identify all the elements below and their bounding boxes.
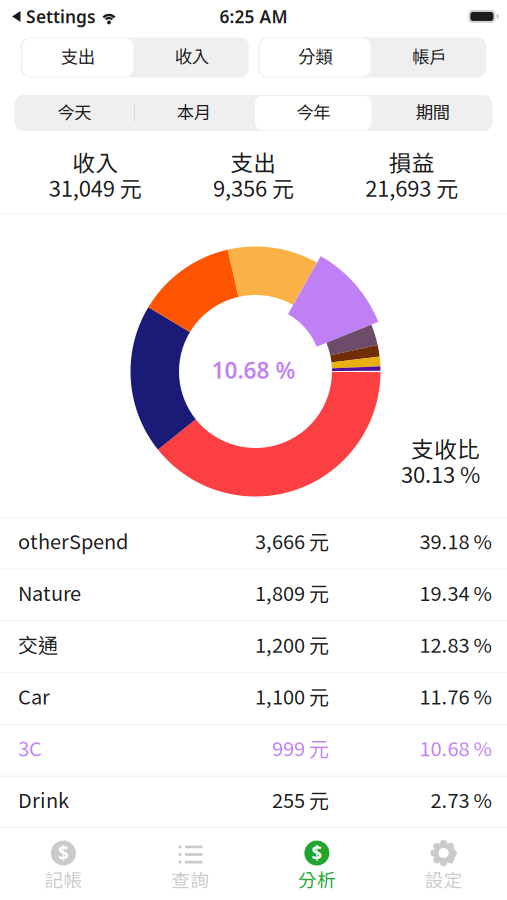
- button[interactable]: 分類: [258, 37, 372, 77]
- staticText: 10.68 %: [211, 355, 295, 385]
- staticText: 11.76 %: [419, 681, 491, 710]
- button[interactable]: 帳戶: [372, 37, 486, 77]
- staticText: Drink: [18, 785, 69, 814]
- staticText: 30.13 %: [401, 458, 480, 489]
- staticText: 39.18 %: [419, 526, 491, 555]
- staticText: 999 元: [272, 733, 329, 762]
- staticText: 損益: [389, 145, 435, 178]
- staticText: 支出: [61, 43, 95, 68]
- button[interactable]: $: [253, 828, 380, 900]
- staticText: 1,200 元: [255, 630, 329, 659]
- staticText: 1,809 元: [255, 578, 329, 607]
- staticText: 設定: [425, 865, 463, 892]
- button[interactable]: 今天: [14, 95, 134, 131]
- staticText: Settings: [26, 5, 96, 28]
- staticText: 本月: [177, 99, 211, 124]
- staticText: 分類: [298, 43, 332, 68]
- staticText: $: [58, 840, 69, 865]
- staticText: 1,100 元: [255, 681, 329, 710]
- button[interactable]: 設定: [380, 828, 507, 900]
- staticText: Car: [18, 681, 50, 710]
- staticText: 6:25 AM: [219, 5, 287, 28]
- staticText: 9,356 元: [213, 171, 294, 203]
- button[interactable]: 查詢: [127, 828, 254, 900]
- button[interactable]: 本月: [134, 95, 253, 131]
- staticText: 支出: [230, 145, 276, 178]
- staticText: 查詢: [171, 865, 209, 892]
- staticText: 2.73 %: [430, 785, 491, 814]
- button[interactable]: 期間: [373, 95, 492, 131]
- staticText: 21,693 元: [365, 171, 458, 203]
- staticText: 31,049 元: [49, 171, 142, 203]
- staticText: 10.68 %: [419, 733, 491, 762]
- button[interactable]: 今年: [253, 95, 373, 131]
- button[interactable]: Nature: [0, 569, 507, 621]
- staticText: 分析: [298, 865, 336, 892]
- button[interactable]: Drink: [0, 776, 507, 828]
- staticText: otherSpend: [18, 526, 128, 555]
- staticText: 收入: [72, 145, 118, 178]
- staticText: 記帳: [44, 865, 82, 892]
- staticText: 收入: [175, 43, 209, 68]
- staticText: 今年: [296, 99, 330, 124]
- staticText: 帳戶: [412, 43, 446, 68]
- staticText: 19.34 %: [419, 578, 491, 607]
- staticText: 今天: [57, 99, 91, 124]
- staticText: 255 元: [272, 785, 329, 814]
- staticText: 支收比: [411, 432, 480, 464]
- button[interactable]: 支出: [21, 37, 135, 77]
- button[interactable]: Settings: [11, 5, 118, 28]
- button[interactable]: $: [0, 828, 127, 900]
- button[interactable]: 交通: [0, 621, 507, 673]
- button[interactable]: 3C: [0, 724, 507, 776]
- staticText: 3,666 元: [255, 526, 329, 555]
- staticText: 3C: [18, 733, 42, 762]
- staticText: 交通: [18, 630, 58, 659]
- staticText: 12.83 %: [419, 630, 491, 659]
- button[interactable]: Car: [0, 673, 507, 725]
- staticText: Nature: [18, 578, 81, 607]
- staticText: 期間: [416, 99, 450, 124]
- button[interactable]: otherSpend: [0, 517, 507, 569]
- staticText: $: [311, 840, 322, 865]
- button[interactable]: 收入: [135, 37, 249, 77]
